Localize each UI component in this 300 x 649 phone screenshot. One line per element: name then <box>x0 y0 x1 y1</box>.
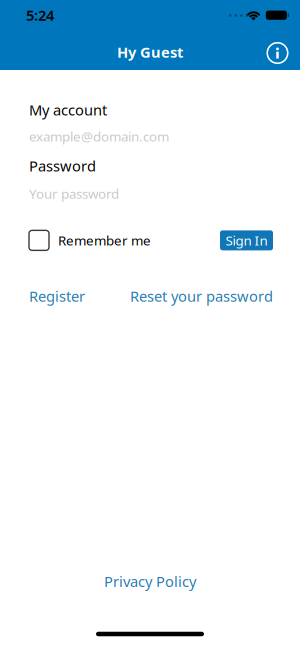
staticText: Remember me <box>58 231 151 249</box>
button[interactable]: Privacy Policy <box>104 571 196 591</box>
staticText: 5:24 <box>26 5 54 25</box>
staticText: Password <box>29 156 96 176</box>
staticText: Sign In <box>225 231 267 249</box>
button[interactable]: example@domain.com <box>29 127 169 145</box>
button[interactable]: Register <box>29 286 85 306</box>
staticText: Privacy Policy <box>104 571 196 591</box>
staticText: Your password <box>29 185 119 202</box>
button[interactable]: Remember me <box>29 230 151 250</box>
staticText: My account <box>29 100 107 119</box>
staticText: Reset your password <box>130 286 273 306</box>
staticText: Hy Guest <box>117 42 183 62</box>
staticText: example@domain.com <box>29 127 169 145</box>
button[interactable]: Your password <box>29 185 119 202</box>
button[interactable] <box>264 40 290 66</box>
button[interactable]: Reset your password <box>130 286 273 306</box>
button[interactable]: Sign In <box>220 230 273 250</box>
staticText: Register <box>29 286 85 306</box>
